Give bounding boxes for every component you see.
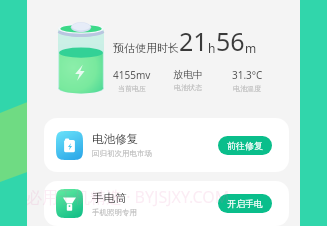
staticText: 必用于机精选 · BYJSJXY.COM xyxy=(26,186,230,208)
button[interactable]: 前往修复 xyxy=(218,136,272,155)
staticText: 开启手电 xyxy=(227,198,263,209)
staticText: 预估使用时长 xyxy=(113,41,179,55)
staticText: 4155mv xyxy=(113,68,151,82)
staticText: 电池修复 xyxy=(92,132,138,146)
staticText: h xyxy=(208,40,216,56)
staticText: 前往修复 xyxy=(227,140,263,151)
staticText: 31.3°C xyxy=(232,68,263,82)
staticText: m xyxy=(245,40,257,56)
staticText: 手电筒 xyxy=(92,191,127,205)
button[interactable]: 手电筒 xyxy=(44,181,289,226)
staticText: 56 xyxy=(216,24,245,58)
staticText: 21 xyxy=(179,24,208,58)
staticText: 电池状态 xyxy=(174,83,202,92)
staticText: 手机照明专用 xyxy=(92,208,137,217)
staticText: 回归初次用电市场 xyxy=(92,149,152,158)
button[interactable]: 开启手电 xyxy=(218,194,272,213)
staticText: 电池温度 xyxy=(233,84,261,93)
staticText: 当前电压 xyxy=(118,84,146,93)
button[interactable]: 电池修复 xyxy=(44,118,289,172)
staticText: 放电中 xyxy=(173,68,203,81)
